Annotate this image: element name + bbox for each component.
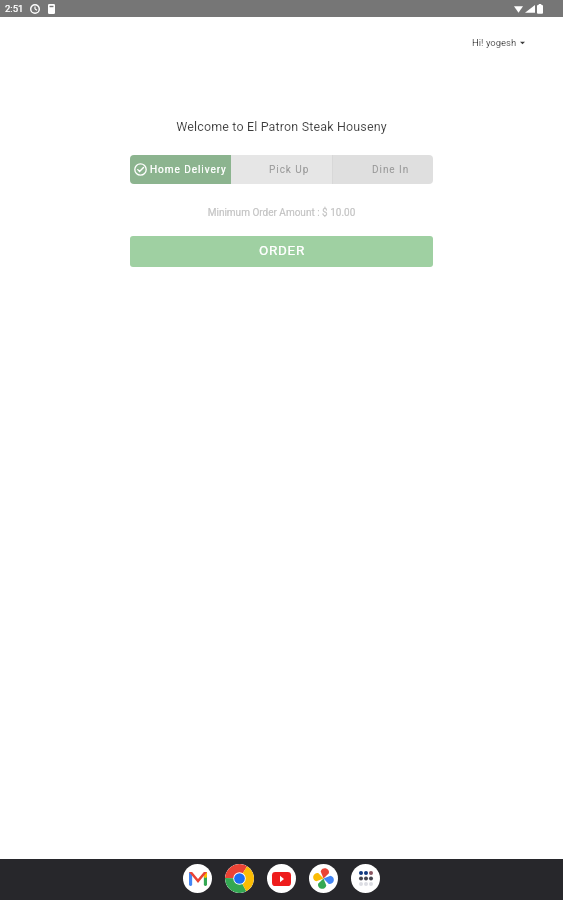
staticText: Minimum Order Amount : $ 10.00 [0, 207, 563, 219]
button[interactable]: Chrome [225, 864, 254, 893]
staticText: Welcome to El Patron Steak Houseny [0, 119, 563, 134]
button[interactable]: Hi! yogesh [468, 33, 529, 52]
button[interactable]: Pick Up [231, 155, 332, 184]
staticText: Dine In [372, 164, 410, 176]
button[interactable]: All apps [351, 864, 380, 893]
staticText: ORDER [259, 242, 305, 258]
button[interactable]: Gmail [183, 864, 212, 893]
button[interactable]: ORDER [130, 236, 433, 267]
staticText: 2:51 [5, 3, 24, 14]
button[interactable]: Home Delivery [130, 155, 231, 184]
staticText: Hi! yogesh [472, 37, 517, 48]
staticText: Home Delivery [150, 164, 227, 176]
button[interactable]: Dine In [332, 155, 433, 184]
staticText: Pick Up [269, 164, 310, 176]
button[interactable]: Photos [309, 864, 338, 893]
button[interactable]: YouTube [267, 864, 296, 893]
